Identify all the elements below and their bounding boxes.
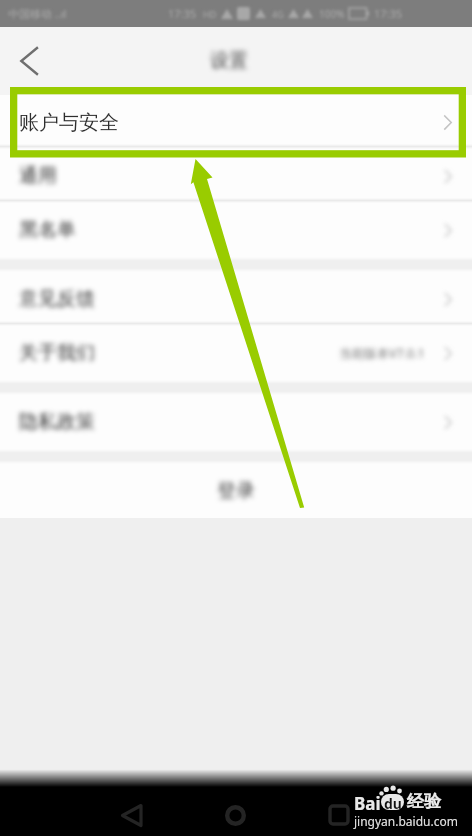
button[interactable]: 通用 [0, 149, 472, 203]
button[interactable]: Recent apps [317, 793, 361, 836]
staticText: 通用 [19, 164, 57, 188]
button[interactable]: 隐私政策 [0, 395, 472, 449]
staticText: 设置 [210, 49, 248, 73]
button[interactable]: 关于我们 [0, 326, 472, 380]
staticText: 意见反馈 [19, 287, 95, 311]
staticText: 17:35 [374, 6, 403, 21]
button[interactable]: Home [213, 793, 257, 836]
staticText: Bai [354, 792, 381, 815]
staticText: 17:35 [168, 6, 197, 21]
staticText: 隐私政策 [19, 410, 95, 434]
staticText: 黑名单 [19, 218, 76, 242]
staticText: du [384, 794, 402, 813]
button[interactable]: 账户与安全 [0, 95, 472, 149]
staticText: 登录 [217, 479, 255, 503]
staticText: 中国移动 ..ıl [8, 6, 67, 21]
button[interactable]: Back [0, 33, 56, 89]
staticText: 当前版本V7.0.1 [339, 345, 425, 362]
staticText: 账户与安全 [19, 110, 119, 135]
staticText: HD [203, 8, 217, 20]
staticText: 4G [272, 8, 284, 20]
staticText: jingyan.baidu.com [354, 813, 458, 829]
staticText: 100% [319, 7, 345, 21]
button[interactable]: 登录 [0, 464, 472, 518]
button[interactable]: 意见反馈 [0, 272, 472, 326]
staticText: 关于我们 [19, 341, 95, 365]
button[interactable]: 黑名单 [0, 203, 472, 257]
staticText: 经验 [407, 791, 441, 812]
button[interactable]: Back [109, 793, 153, 836]
